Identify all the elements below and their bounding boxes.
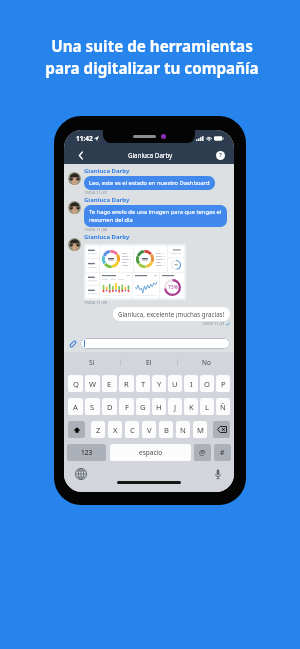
button[interactable]: F — [119, 398, 134, 415]
button[interactable]: T — [136, 375, 150, 392]
button[interactable]: L — [200, 398, 214, 415]
staticText: F — [125, 402, 129, 412]
staticText: O — [204, 379, 210, 389]
staticText: El — [146, 358, 152, 367]
button[interactable]: O — [200, 375, 214, 392]
button[interactable]: R — [119, 375, 134, 392]
button[interactable]: X — [108, 421, 122, 438]
button[interactable]: Si — [64, 352, 120, 373]
button[interactable]: espacio — [110, 444, 191, 461]
button[interactable]: G — [136, 398, 150, 415]
staticText: U — [172, 379, 178, 389]
button[interactable]: S — [85, 398, 100, 415]
button[interactable]: Dictate — [211, 467, 224, 480]
staticText: 15/04 11:38 — [84, 227, 107, 233]
staticText: D — [107, 402, 113, 412]
staticText: R — [124, 379, 129, 389]
staticText: L — [205, 402, 209, 412]
staticText: No — [202, 358, 211, 367]
staticText: Gianluca Darby — [84, 233, 130, 241]
staticText: para digitalizar tu compañía — [45, 58, 259, 79]
button[interactable]: I — [184, 375, 198, 392]
button[interactable]: J — [168, 398, 182, 415]
staticText: 73% — [168, 284, 178, 291]
button[interactable]: 123 — [67, 444, 106, 461]
staticText: J — [174, 402, 177, 412]
staticText: Gianluca Darby — [128, 151, 173, 159]
button[interactable]: Back — [74, 148, 88, 162]
staticText: 15/04 11:39 — [84, 300, 107, 306]
staticText: C — [130, 425, 135, 435]
button[interactable]: P — [216, 375, 230, 392]
button[interactable]: @ — [194, 444, 211, 461]
staticText: M — [197, 425, 204, 435]
button[interactable]: N — [176, 421, 190, 438]
staticText: espacio — [139, 448, 163, 457]
button[interactable]: No — [178, 352, 234, 373]
button[interactable]: K — [184, 398, 198, 415]
staticText: Z — [96, 425, 101, 435]
staticText: @ — [199, 448, 206, 458]
button[interactable]: H — [152, 398, 166, 415]
button[interactable]: Q — [68, 375, 83, 392]
staticText: 11:42 — [76, 134, 93, 143]
staticText: E — [107, 379, 112, 389]
staticText: Q — [73, 379, 79, 389]
staticText: T — [141, 379, 146, 389]
button[interactable]: U — [168, 375, 182, 392]
staticText: Gianluca Darby — [84, 196, 130, 204]
staticText: Gianluca Darby — [84, 167, 130, 175]
staticText: I — [190, 379, 193, 389]
staticText: G — [140, 402, 146, 412]
staticText: Leo, este es el estado en nuestro Dashbo… — [89, 179, 210, 187]
button[interactable]: V — [142, 421, 156, 438]
staticText: Si — [89, 358, 95, 367]
button[interactable]: C — [125, 421, 139, 438]
button[interactable]: A — [68, 398, 83, 415]
staticText: Gianluca, excelente ¡muchas gracias! — [118, 310, 225, 318]
button[interactable]: Y — [152, 375, 166, 392]
button[interactable] — [80, 338, 230, 349]
button[interactable]: Shift — [68, 421, 85, 438]
staticText: B — [164, 425, 169, 435]
button[interactable]: Z — [91, 421, 105, 438]
button[interactable]: M — [193, 421, 207, 438]
staticText: Te hago envío de una imagen para que ten… — [89, 208, 222, 224]
staticText: X — [113, 425, 118, 435]
staticText: W — [89, 379, 97, 389]
staticText: S — [90, 402, 95, 412]
staticText: 15/04 11:41 — [202, 321, 225, 327]
button[interactable]: # — [214, 444, 231, 461]
staticText: K — [189, 402, 194, 412]
button[interactable]: El — [121, 352, 177, 373]
button[interactable]: Attach file — [68, 339, 78, 349]
button[interactable]: Help — [213, 148, 227, 162]
staticText: 15/04 11:37 — [84, 190, 107, 196]
staticText: ? — [219, 151, 222, 159]
staticText: A — [73, 402, 78, 412]
button[interactable]: Change keyboard — [74, 467, 87, 480]
staticText: Una suite de herramientas — [51, 36, 253, 57]
staticText: Y — [157, 379, 162, 389]
staticText: H — [156, 402, 162, 412]
staticText: P — [221, 379, 226, 389]
staticText: # — [220, 448, 225, 458]
button[interactable]: Ñ — [216, 398, 230, 415]
button[interactable]: E — [102, 375, 117, 392]
button[interactable]: B — [159, 421, 173, 438]
staticText: Ñ — [220, 402, 226, 412]
button[interactable]: D — [102, 398, 117, 415]
button[interactable]: W — [85, 375, 100, 392]
button[interactable]: Delete — [213, 421, 230, 438]
staticText: V — [147, 425, 152, 435]
staticText: 123 — [81, 448, 93, 457]
staticText: N — [180, 425, 186, 435]
